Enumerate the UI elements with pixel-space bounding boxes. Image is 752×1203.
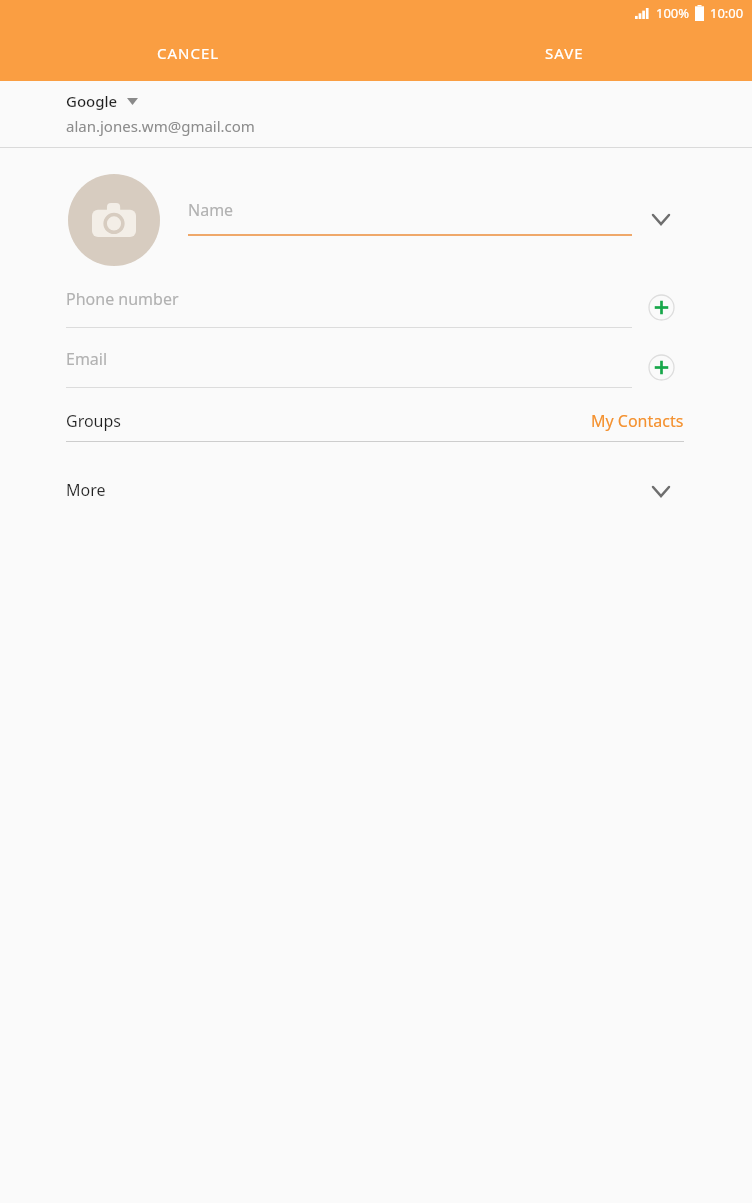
button[interactable]: Name bbox=[188, 196, 632, 236]
button[interactable]: Add Phone number bbox=[640, 286, 682, 328]
button[interactable]: Expand name fields bbox=[640, 198, 682, 240]
button[interactable]: Groups bbox=[66, 410, 684, 442]
staticText: 10:00 bbox=[710, 4, 744, 22]
staticText: Phone number bbox=[66, 288, 179, 310]
staticText: CANCEL bbox=[157, 43, 220, 63]
staticText: My Contacts bbox=[591, 410, 684, 432]
staticText: Groups bbox=[66, 410, 122, 432]
button[interactable]: Add contact photo bbox=[68, 174, 160, 266]
staticText: More bbox=[66, 479, 106, 501]
staticText: Google bbox=[66, 91, 118, 111]
staticText: 100% bbox=[656, 4, 690, 22]
staticText: SAVE bbox=[545, 43, 584, 63]
button[interactable]: More bbox=[0, 470, 752, 512]
button[interactable]: Google bbox=[0, 81, 752, 147]
button[interactable]: CANCEL bbox=[0, 25, 376, 81]
staticText: Email bbox=[66, 348, 108, 370]
button[interactable]: Add Email bbox=[640, 346, 682, 388]
button[interactable]: SAVE bbox=[376, 25, 752, 81]
button[interactable]: Email bbox=[66, 348, 632, 388]
button[interactable]: Phone number bbox=[66, 288, 632, 328]
staticText: Name bbox=[188, 199, 234, 221]
staticText: alan.jones.wm@gmail.com bbox=[66, 116, 255, 136]
